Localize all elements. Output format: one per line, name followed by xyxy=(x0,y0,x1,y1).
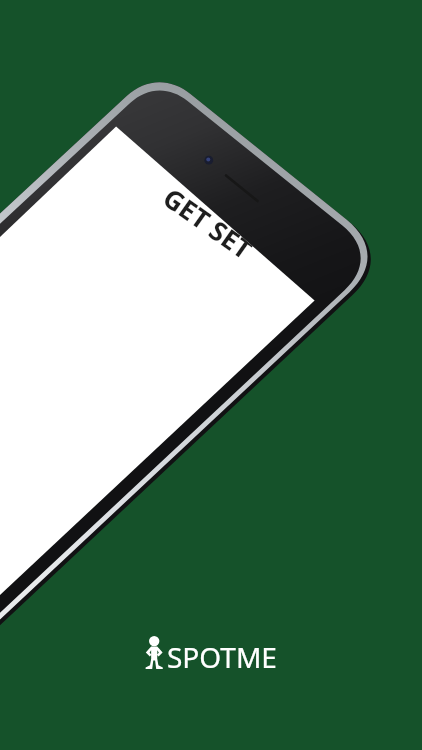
button[interactable] xyxy=(0,0,422,750)
